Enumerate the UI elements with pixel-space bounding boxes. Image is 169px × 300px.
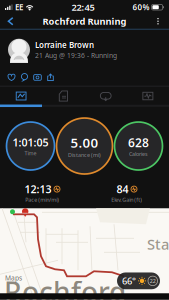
staticText: 5.00: [70, 134, 98, 151]
staticText: Rochford Running: [42, 15, 126, 27]
button[interactable]: Laps: [84, 87, 127, 104]
staticText: 84: [116, 182, 128, 196]
staticText: Maps: [5, 273, 22, 282]
button[interactable]: Lorraine Brown: [0, 30, 169, 67]
staticText: Distance (mi): [68, 151, 101, 158]
button[interactable]: Photos: [31, 70, 44, 85]
staticText: Pace (min/mi): [25, 196, 59, 203]
staticText: EE: [15, 2, 23, 12]
staticText: 22: [150, 277, 156, 284]
button[interactable]: Details: [42, 87, 84, 104]
staticText: Time: [24, 150, 36, 157]
staticText: Sta: [147, 234, 169, 254]
button[interactable]: More options: [149, 14, 167, 29]
staticText: 1:01:05: [12, 135, 48, 150]
staticText: Rochford: [4, 273, 126, 300]
staticText: 60%: [133, 2, 150, 12]
staticText: 628: [128, 134, 149, 150]
button[interactable]: Analysis: [127, 87, 169, 104]
staticText: 22:45: [72, 1, 95, 13]
staticText: Lorraine Brown: [35, 39, 94, 50]
staticText: 21 Aug @ 19:36 - Running: [35, 51, 117, 60]
staticText: 12:13: [24, 182, 51, 196]
staticText: Calories: [129, 150, 148, 158]
button[interactable]: Map: [0, 87, 42, 104]
button[interactable]: Comment: [18, 70, 31, 85]
button[interactable]: Share: [44, 70, 57, 85]
button[interactable]: Back: [2, 14, 20, 29]
staticText: 66°: [122, 275, 136, 287]
staticText: Elev. Gain (ft): [111, 196, 142, 203]
button[interactable]: Like: [5, 70, 18, 85]
